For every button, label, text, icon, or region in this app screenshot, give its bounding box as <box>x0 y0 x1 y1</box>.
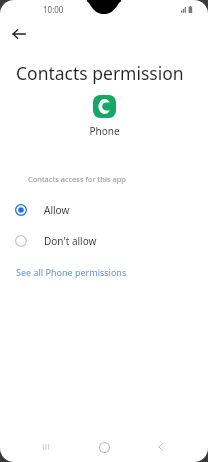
staticText: 10:00 <box>43 4 64 15</box>
staticText: See all Phone permissions <box>16 266 127 278</box>
button[interactable]: Home <box>92 435 116 459</box>
button[interactable]: Allow <box>0 194 208 225</box>
staticText: Don't allow <box>44 234 97 248</box>
staticText: Phone <box>89 124 120 138</box>
button[interactable]: Navigate up <box>6 21 31 46</box>
staticText: Contacts access for this app <box>28 174 126 184</box>
button[interactable]: Back <box>149 435 173 459</box>
button[interactable]: Don't allow <box>0 225 208 256</box>
button[interactable]: Recent apps <box>34 435 58 459</box>
staticText: Contacts permission <box>16 61 184 85</box>
staticText: Allow <box>44 203 70 217</box>
button[interactable]: See all Phone permissions <box>15 262 128 282</box>
